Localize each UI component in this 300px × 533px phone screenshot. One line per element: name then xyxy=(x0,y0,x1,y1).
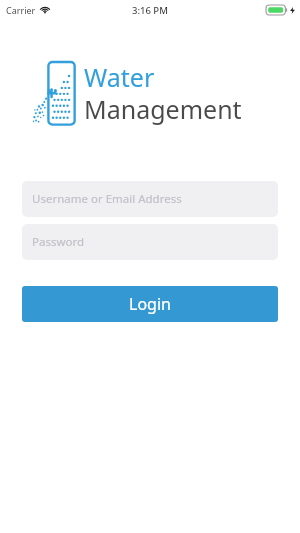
staticText: Login xyxy=(129,293,171,315)
staticText: Management xyxy=(84,92,242,126)
staticText: Carrier xyxy=(6,4,36,16)
staticText: Password xyxy=(32,234,85,250)
button[interactable]: Login xyxy=(22,286,278,322)
staticText: 3:16 PM xyxy=(132,4,168,17)
button[interactable]: Password xyxy=(22,224,278,260)
other: Water Management logo xyxy=(33,58,79,130)
button[interactable]: Username or Email Address xyxy=(22,181,278,217)
staticText: Username or Email Address xyxy=(32,191,182,207)
staticText: Water xyxy=(84,60,155,94)
